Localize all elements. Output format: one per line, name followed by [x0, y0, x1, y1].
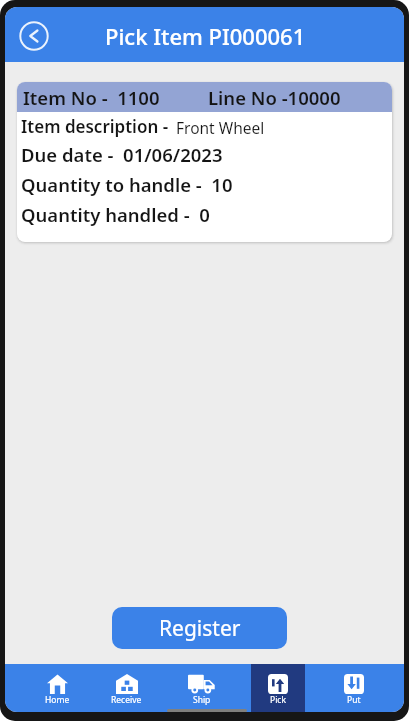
- staticText: Put: [347, 694, 361, 706]
- staticText: Item description -: [21, 115, 173, 138]
- staticText: Receive: [111, 694, 142, 706]
- staticText: Pick Item PI000061: [105, 21, 306, 51]
- staticText: Front Wheel: [176, 117, 265, 138]
- button[interactable]: Pick: [251, 664, 305, 712]
- button[interactable]: Put: [327, 664, 381, 712]
- button[interactable]: Register: [112, 607, 287, 649]
- staticText: Ship: [193, 694, 211, 706]
- staticText: Due date - 01/06/2023: [21, 142, 223, 167]
- staticText: Quantity handled - 0: [21, 202, 210, 227]
- button[interactable]: Back: [16, 18, 52, 54]
- staticText: Home: [45, 694, 70, 706]
- staticText: Pick: [270, 694, 286, 706]
- staticText: Line No -10000: [208, 85, 341, 110]
- button[interactable]: Receive: [99, 664, 153, 712]
- button[interactable]: Home: [30, 664, 84, 712]
- staticText: Item No - 1100: [23, 85, 160, 110]
- staticText: Quantity to handle - 10: [21, 172, 233, 197]
- staticText: Register: [159, 614, 241, 643]
- button[interactable]: Ship: [174, 664, 228, 712]
